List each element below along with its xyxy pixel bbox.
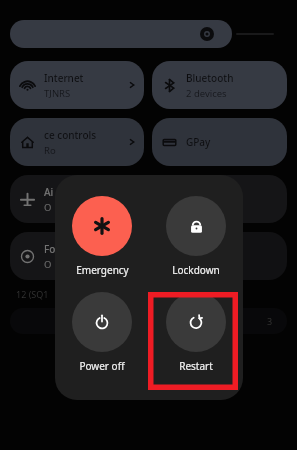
staticText: 3 — [267, 315, 273, 327]
staticText: 12 (SQ1 — [16, 288, 49, 300]
staticText: O — [44, 201, 52, 214]
staticText: Ro — [44, 144, 56, 157]
button[interactable]: Bluetooth — [152, 61, 287, 109]
staticText: ce controls — [44, 128, 97, 142]
button[interactable]: Lockdown — [149, 196, 243, 277]
button[interactable]: Internet — [10, 61, 144, 109]
button[interactable]: 3 — [10, 308, 287, 334]
staticText: 2 devices — [186, 87, 227, 100]
button[interactable]: Power off — [55, 292, 149, 373]
button[interactable]: Ai — [10, 175, 144, 223]
button[interactable]: GPay — [152, 118, 287, 166]
button[interactable] — [10, 20, 232, 48]
button[interactable]: Restart — [149, 292, 243, 373]
button[interactable]: urb — [152, 175, 287, 223]
staticText: Fo — [44, 242, 56, 256]
staticText: Internet — [44, 71, 84, 85]
staticText: Ai — [44, 185, 54, 199]
staticText: O — [44, 258, 52, 271]
button[interactable]: Emergency — [55, 196, 149, 277]
staticText: GPay — [186, 135, 211, 149]
staticText: Restart — [179, 359, 213, 373]
button[interactable]: ce controls — [10, 118, 144, 166]
staticText: Lockdown — [172, 263, 220, 277]
staticText: Power off — [79, 359, 125, 373]
staticText: Bluetooth — [186, 71, 234, 85]
button[interactable] — [152, 232, 287, 280]
button[interactable]: Fo — [10, 232, 144, 280]
staticText: Emergency — [76, 263, 129, 277]
staticText: TJNRS — [44, 87, 71, 100]
